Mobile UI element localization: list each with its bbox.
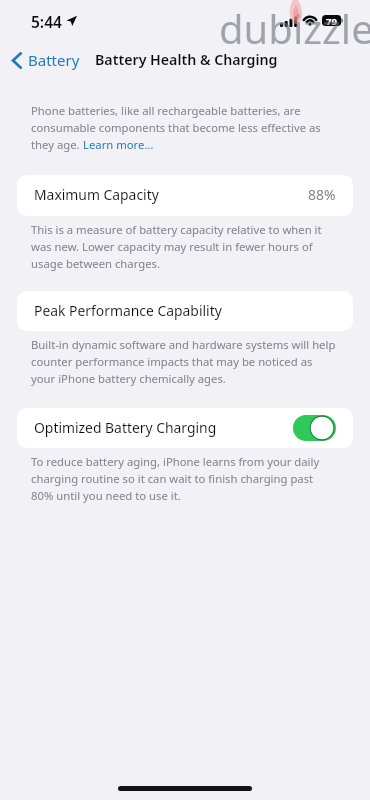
staticText: To reduce battery aging, iPhone learns f… — [31, 454, 320, 469]
staticText: Battery — [28, 50, 80, 70]
button[interactable]: Optimized Battery Charging toggle — [293, 415, 336, 441]
button[interactable]: Optimized Battery Charging — [17, 408, 353, 448]
staticText: dubizzle — [219, 1, 370, 55]
button[interactable]: Peak Performance Capability — [17, 291, 353, 331]
staticText: 80% until you need to use it. — [31, 488, 181, 503]
staticText: Maximum Capacity — [34, 185, 159, 204]
staticText: 88% — [308, 185, 336, 204]
staticText: Peak Performance Capability — [34, 301, 222, 320]
staticText: was new. Lower capacity may result in fe… — [31, 239, 313, 254]
staticText: usage between charges. — [31, 256, 160, 271]
staticText: they age. — [31, 137, 83, 152]
staticText: charging routine so it can wait to finis… — [31, 471, 314, 486]
staticText: This is a measure of battery capacity re… — [31, 222, 322, 237]
button[interactable]: Maximum Capacity — [17, 175, 353, 216]
staticText: Built-in dynamic software and hardware s… — [31, 337, 336, 352]
staticText: 5:44 — [31, 11, 62, 32]
staticText: 79 — [326, 15, 337, 26]
button[interactable]: Learn more… — [83, 137, 154, 152]
staticText: Battery Health & Charging — [95, 50, 278, 69]
staticText: Optimized Battery Charging — [34, 418, 217, 437]
staticText: counter performance impacts that may be … — [31, 354, 313, 369]
button[interactable]: Battery — [8, 44, 84, 76]
staticText: your iPhone battery chemically ages. — [31, 371, 226, 386]
staticText: Phone batteries, like all rechargeable b… — [31, 103, 301, 118]
staticText: consumable components that become less e… — [31, 120, 321, 135]
